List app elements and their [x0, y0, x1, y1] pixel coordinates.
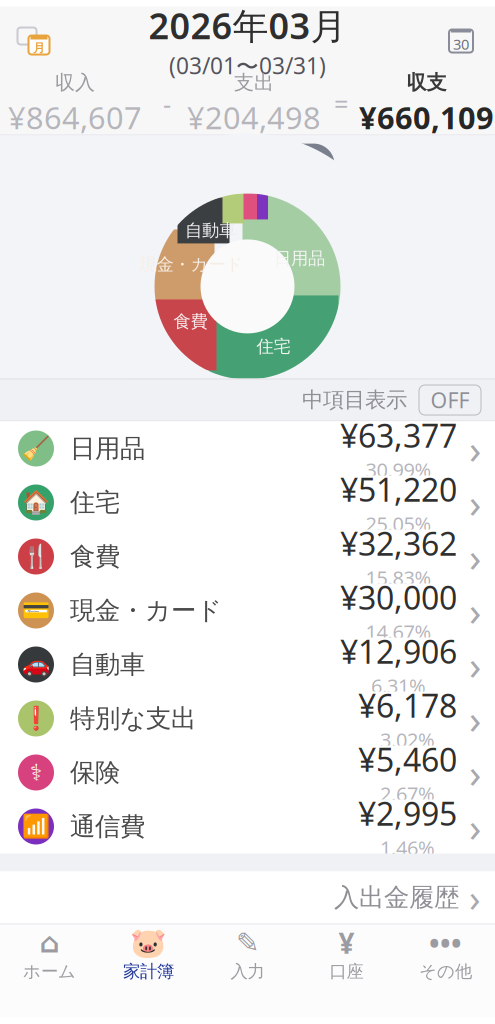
- staticText: ›: [469, 800, 481, 853]
- staticText: 住宅: [70, 487, 120, 518]
- staticText: 14.67%: [365, 618, 431, 645]
- staticText: =: [334, 87, 348, 121]
- button[interactable]: 入出金履歴: [0, 871, 495, 923]
- staticText: 収支: [406, 70, 446, 95]
- staticText: 特別な支出: [70, 703, 196, 734]
- button[interactable]: 🍴: [0, 529, 495, 583]
- staticText: ホーム: [23, 961, 76, 982]
- staticText: ›: [469, 692, 481, 745]
- staticText: ⚕: [30, 760, 42, 785]
- staticText: 2026年03月: [148, 1, 346, 49]
- staticText: ¥6,178: [358, 684, 457, 726]
- staticText: 6.31%: [371, 672, 426, 699]
- staticText: 1.46%: [380, 834, 435, 861]
- staticText: 現金・カード: [70, 595, 222, 626]
- staticText: 3.02%: [380, 726, 435, 753]
- staticText: 🍴: [22, 544, 50, 569]
- staticText: 自動車: [185, 220, 236, 241]
- button[interactable]: ¥: [297, 924, 396, 987]
- staticText: 収入: [55, 70, 95, 95]
- staticText: 日用品: [274, 248, 325, 269]
- button[interactable]: 🧹: [0, 421, 495, 475]
- button[interactable]: OFF: [419, 385, 481, 415]
- staticText: ⌂: [39, 927, 59, 959]
- staticText: 現金・カード: [139, 254, 243, 275]
- button[interactable]: ✎: [198, 924, 297, 987]
- staticText: ›: [469, 746, 481, 799]
- staticText: 食費: [70, 541, 120, 572]
- staticText: ¥: [338, 924, 354, 961]
- staticText: 通信費: [70, 811, 145, 842]
- staticText: •••: [429, 924, 462, 961]
- button[interactable]: 🚗: [0, 637, 495, 691]
- staticText: ›: [469, 638, 481, 691]
- staticText: その他: [419, 961, 472, 982]
- button[interactable]: ⌂: [0, 924, 99, 987]
- staticText: ❗: [22, 706, 50, 731]
- staticText: 15.83%: [365, 564, 431, 591]
- staticText: 保険: [70, 757, 120, 788]
- staticText: 💳: [22, 598, 50, 623]
- staticText: 口座: [329, 961, 363, 982]
- button[interactable]: ⚕: [0, 745, 495, 799]
- staticText: ¥2,995: [358, 792, 457, 834]
- staticText: ›: [469, 873, 481, 922]
- staticText: 🐷: [130, 926, 167, 960]
- staticText: ›: [469, 530, 481, 583]
- staticText: 日用品: [70, 433, 145, 464]
- button[interactable]: •••: [396, 924, 495, 987]
- staticText: ›: [469, 476, 481, 529]
- button[interactable]: 🐷: [99, 924, 198, 987]
- staticText: ¥63,377: [340, 414, 457, 456]
- staticText: ¥32,362: [340, 522, 457, 564]
- button[interactable]: 月表示切替: [8, 15, 60, 67]
- staticText: 30: [453, 34, 469, 54]
- button[interactable]: 📶: [0, 799, 495, 853]
- staticText: (03/01〜03/31): [169, 50, 326, 80]
- button[interactable]: 🏠: [0, 475, 495, 529]
- staticText: 入力: [230, 961, 264, 982]
- staticText: 30.99%: [365, 456, 431, 483]
- staticText: ¥660,109: [359, 97, 494, 138]
- button[interactable]: カレンダー: [435, 15, 487, 67]
- staticText: 支出: [234, 70, 274, 95]
- staticText: 入出金履歴: [334, 882, 459, 913]
- staticText: 住宅: [256, 336, 290, 357]
- staticText: ✎: [236, 927, 259, 959]
- staticText: 月: [33, 41, 45, 55]
- button[interactable]: 支出: [248, 144, 334, 185]
- staticText: ¥5,460: [358, 738, 457, 780]
- staticText: 🏠: [22, 490, 50, 515]
- staticText: 🚗: [22, 652, 50, 677]
- staticText: 📶: [22, 814, 50, 839]
- staticText: ¥864,607: [8, 97, 142, 138]
- staticText: -: [163, 87, 171, 121]
- staticText: OFF: [430, 386, 469, 414]
- staticText: ¥204,498: [187, 97, 321, 138]
- staticText: 家計簿: [123, 961, 174, 982]
- staticText: 食費: [173, 311, 207, 332]
- staticText: ¥12,906: [340, 630, 457, 672]
- staticText: ›: [469, 422, 481, 475]
- button[interactable]: 💳: [0, 583, 495, 637]
- staticText: 自動車: [70, 649, 145, 680]
- staticText: ›: [469, 584, 481, 637]
- staticText: 🧹: [22, 436, 50, 461]
- staticText: ¥51,220: [340, 468, 457, 510]
- staticText: ¥30,000: [340, 576, 457, 618]
- button[interactable]: ❗: [0, 691, 495, 745]
- staticText: 25.05%: [365, 510, 431, 537]
- staticText: 中項目表示: [302, 387, 407, 413]
- staticText: 2.67%: [380, 780, 435, 807]
